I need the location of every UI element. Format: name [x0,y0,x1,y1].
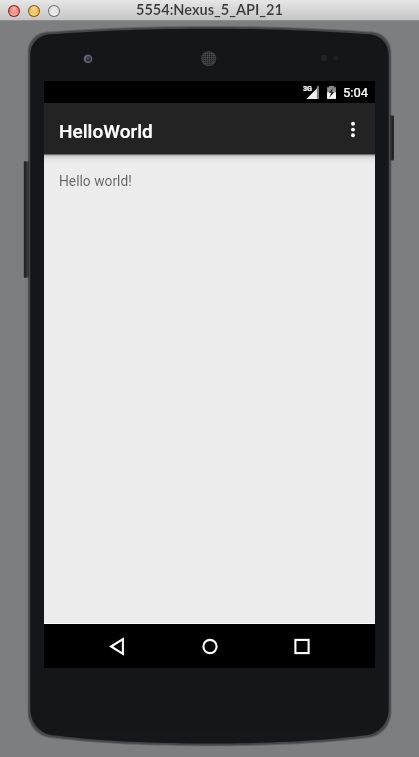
staticText: 5:04 [343,85,369,100]
button[interactable]: More options [331,103,375,154]
staticText: 3G [303,84,313,92]
staticText: Hello world! [59,173,132,189]
button[interactable]: Minimize [28,5,40,17]
button[interactable]: Close [8,5,20,17]
button[interactable]: Zoom [48,5,60,17]
staticText: 5554:Nexus_5_API_21 [136,1,283,18]
staticText: HelloWorld [59,120,153,142]
button[interactable]: Recents [279,624,325,668]
button[interactable]: Home [187,624,233,668]
button[interactable]: Back [94,624,140,668]
